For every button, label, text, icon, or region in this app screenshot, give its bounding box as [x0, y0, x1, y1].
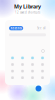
- staticText: See all: [37, 26, 46, 30]
- staticText: My Library: [14, 3, 41, 10]
- button[interactable]: See all: [37, 26, 46, 30]
- staticText: 12 saved shortcuts: [15, 11, 40, 14]
- button[interactable]: Recents: [9, 26, 23, 30]
- button[interactable]: New shortcut: [35, 85, 41, 91]
- staticText: Recents: [11, 26, 22, 30]
